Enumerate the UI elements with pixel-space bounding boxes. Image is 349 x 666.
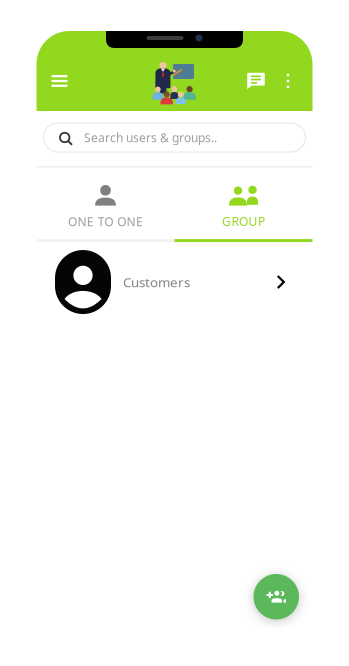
staticText: Search users & groups.. [84,129,217,145]
button[interactable]: More options [273,59,302,103]
button[interactable]: ONE TO ONE [36,167,174,239]
button[interactable]: Menu [42,59,76,103]
button[interactable]: Customers [36,244,312,320]
button[interactable]: GROUP [174,168,312,239]
staticText: ONE TO ONE [68,214,143,229]
staticText: GROUP [222,213,265,229]
button[interactable]: Create group [253,574,299,619]
button[interactable]: Messages [238,59,273,103]
button[interactable]: Search users & groups.. [43,123,305,152]
staticText: Customers [123,273,190,291]
